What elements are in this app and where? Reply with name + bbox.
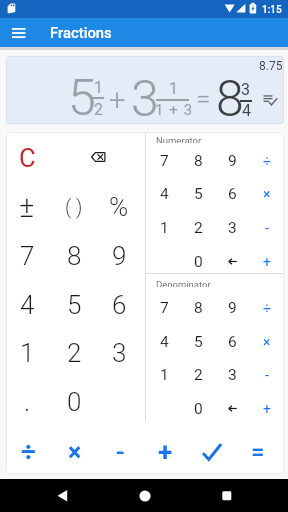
button[interactable]	[212, 481, 242, 511]
button[interactable]: 6	[97, 282, 141, 328]
button[interactable]: =	[235, 431, 280, 473]
button[interactable]: 5	[52, 282, 96, 328]
button[interactable]: 5	[182, 326, 215, 357]
button[interactable]: ×	[250, 178, 283, 209]
staticText: 4	[20, 290, 35, 320]
staticText: 2	[67, 338, 82, 368]
staticText: ÷	[21, 437, 36, 467]
button[interactable]: ÷	[250, 145, 283, 176]
button[interactable]: 4	[148, 326, 181, 357]
staticText: ÷	[263, 300, 271, 316]
staticText: =	[196, 84, 211, 112]
staticText: 7	[160, 152, 169, 170]
button[interactable]: 3	[216, 212, 249, 243]
button[interactable]	[189, 431, 234, 473]
button[interactable]: 1	[5, 330, 49, 376]
staticText: 1	[20, 338, 35, 368]
staticText: +	[263, 401, 271, 417]
staticText: ( )	[65, 196, 83, 219]
staticText: 4	[160, 333, 169, 351]
button[interactable]: 1	[148, 212, 181, 243]
button[interactable]: 5	[182, 178, 215, 209]
button[interactable]: 9	[216, 145, 249, 176]
staticText: =	[251, 438, 265, 466]
button[interactable]: 4	[5, 282, 49, 328]
button[interactable]	[6, 23, 32, 43]
staticText: 1	[94, 78, 103, 96]
staticText: 5	[194, 333, 203, 351]
button[interactable]: ×	[52, 431, 97, 473]
staticText: 1 + 3	[155, 101, 194, 119]
button[interactable]	[130, 481, 160, 511]
staticText: 3	[112, 338, 127, 368]
button[interactable]: -	[98, 431, 143, 473]
staticText: ÷	[263, 153, 271, 169]
staticText: 3	[228, 366, 237, 384]
staticText: 1	[169, 79, 178, 97]
staticText: 8	[194, 152, 203, 170]
staticText: +	[158, 437, 173, 467]
button[interactable]: 7	[148, 145, 181, 176]
button[interactable]: .	[5, 379, 49, 425]
button[interactable]: +	[250, 393, 283, 424]
staticText: 9	[228, 152, 237, 170]
button[interactable]	[47, 481, 77, 511]
button[interactable]: -	[250, 212, 283, 243]
staticText: -	[265, 220, 269, 236]
button[interactable]: 8	[182, 145, 215, 176]
staticText: 2	[94, 100, 103, 118]
button[interactable]: 2	[182, 359, 215, 390]
staticText: 8	[216, 70, 244, 129]
staticText: 3	[131, 70, 159, 129]
button[interactable]: 9	[97, 233, 141, 279]
button[interactable]: ×	[250, 326, 283, 357]
button[interactable]: 0	[182, 246, 215, 277]
button[interactable]: 0	[52, 379, 96, 425]
button[interactable]: 3	[97, 330, 141, 376]
button[interactable]: ÷	[6, 431, 51, 473]
button[interactable]: ÷	[250, 292, 283, 323]
staticText: 5	[68, 69, 96, 128]
button[interactable]: 2	[182, 212, 215, 243]
button[interactable]: 6	[216, 326, 249, 357]
staticText: 6	[228, 333, 237, 351]
staticText: 6	[228, 185, 237, 203]
button[interactable]: %	[97, 184, 141, 230]
button[interactable]: 0	[182, 393, 215, 424]
staticText: 0	[67, 387, 82, 417]
staticText: ×	[263, 334, 271, 350]
staticText: 3	[241, 80, 250, 98]
staticText: 8.75	[259, 59, 283, 73]
staticText: 7	[20, 241, 35, 271]
button[interactable]: -	[250, 359, 283, 390]
button[interactable]: 8	[52, 233, 96, 279]
staticText: 6	[112, 290, 127, 320]
staticText: +	[263, 254, 271, 270]
button[interactable]: C	[5, 135, 49, 181]
staticText: 0	[194, 253, 203, 271]
staticText: -	[116, 437, 125, 467]
button[interactable]: 2	[52, 330, 96, 376]
button[interactable]: +	[250, 246, 283, 277]
button[interactable]: 1	[148, 359, 181, 390]
button[interactable]: 7	[148, 292, 181, 323]
staticText: 4	[242, 101, 251, 119]
button[interactable]: 7	[5, 233, 49, 279]
button[interactable]: 6	[216, 178, 249, 209]
button[interactable]: 9	[216, 292, 249, 323]
staticText: 1:15	[262, 4, 282, 16]
button[interactable]: 4	[148, 178, 181, 209]
button[interactable]	[257, 91, 283, 109]
button[interactable]	[216, 393, 249, 424]
button[interactable]: 3	[216, 359, 249, 390]
button[interactable]: 8	[182, 292, 215, 323]
button[interactable]: +	[143, 431, 188, 473]
button[interactable]: ±	[5, 184, 49, 230]
button[interactable]	[52, 135, 142, 181]
button[interactable]: ( )	[52, 184, 96, 230]
staticText: 5	[67, 290, 82, 320]
button[interactable]	[216, 246, 249, 277]
staticText: Fractions	[50, 24, 112, 41]
staticText: ±	[19, 190, 35, 224]
staticText: 8	[194, 299, 203, 317]
